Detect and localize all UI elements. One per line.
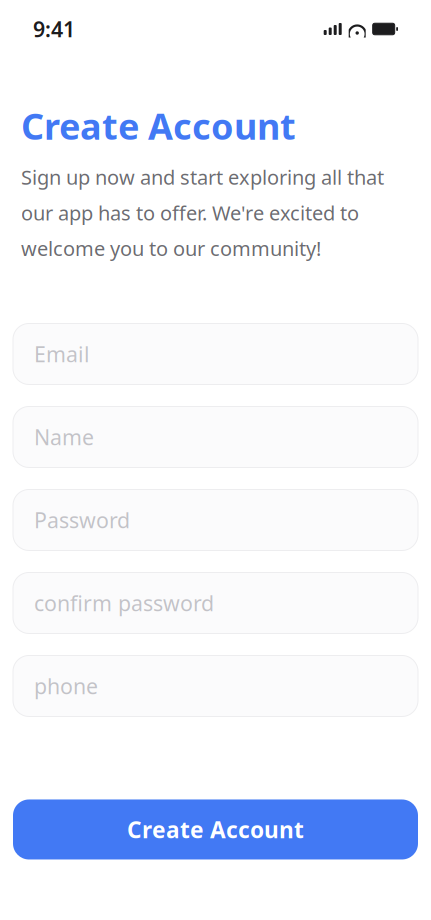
staticText: Create Account	[127, 814, 304, 844]
staticText: confirm password	[34, 589, 214, 617]
button[interactable]: Name	[13, 406, 418, 467]
staticText: phone	[34, 672, 98, 700]
staticText: Password	[34, 506, 130, 534]
staticText: Name	[34, 423, 94, 451]
button[interactable]: confirm password	[13, 572, 418, 633]
staticText: 9:41	[33, 15, 75, 43]
staticText: Email	[34, 340, 90, 368]
staticText: Create Account	[21, 102, 296, 150]
staticText: Sign up now and start exploring all that…	[21, 164, 384, 261]
button[interactable]: Create Account	[13, 799, 418, 859]
button[interactable]: Email	[13, 323, 418, 384]
button[interactable]: phone	[13, 655, 418, 716]
button[interactable]: Password	[13, 489, 418, 550]
